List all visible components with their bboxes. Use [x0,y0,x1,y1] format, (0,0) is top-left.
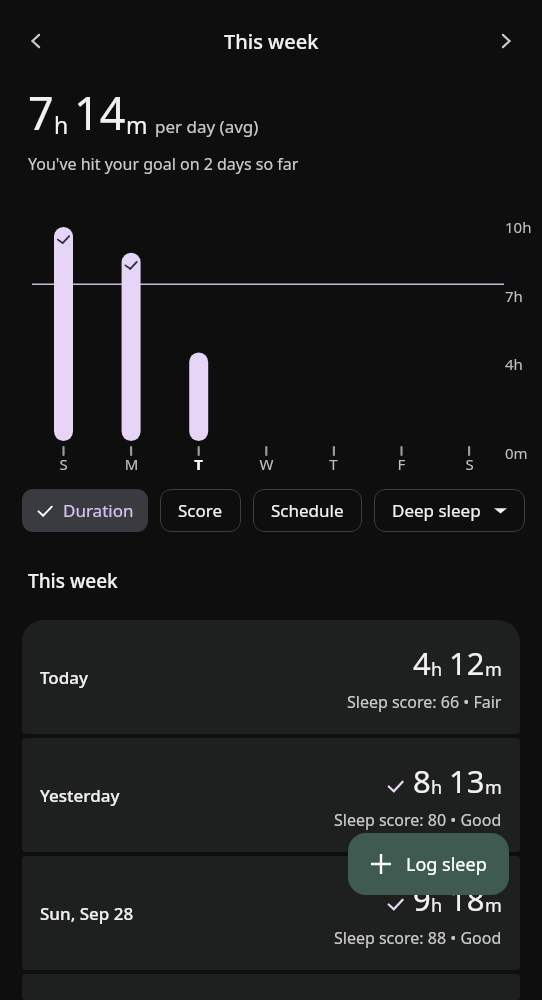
staticText: h [431,893,443,918]
staticText: Duration [63,499,134,522]
staticText: Sun, Sep 28 [40,902,134,925]
staticText: T [180,454,217,474]
staticText: 10h [505,217,532,237]
staticText: S [45,454,82,474]
staticText: M [113,454,150,474]
button[interactable]: Yesterday [22,738,520,852]
staticText: Log sleep [406,852,487,877]
staticText: This week [224,28,319,55]
staticText: 14 [74,82,126,143]
staticText: h [431,775,443,800]
staticText: m [485,657,502,682]
staticText: h [431,657,443,682]
staticText: Sleep score: 80 • Good [334,809,502,831]
staticText: Sleep score: 88 • Good [334,927,502,949]
staticText: 4 [413,642,431,684]
staticText: m [485,893,502,918]
staticText: 18 [449,878,485,920]
staticText: T [315,454,352,474]
staticText: m [126,109,148,140]
staticText: Deep sleep [392,499,481,522]
button[interactable]: Score [160,489,241,532]
staticText: W [248,454,285,474]
button[interactable]: Next week [483,18,529,64]
staticText: Today [40,666,88,689]
staticText: 9 [413,878,431,920]
staticText: Score [178,499,223,522]
staticText: F [383,454,420,474]
button[interactable]: Schedule [253,489,362,532]
staticText: per day (avg) [155,115,259,138]
staticText: h [54,109,69,140]
staticText: You've hit your goal on 2 days so far [28,153,299,175]
button[interactable]: Today [22,620,520,734]
staticText: 4h [505,354,523,374]
staticText: This week [28,568,118,594]
staticText: 7h [505,286,523,306]
button[interactable]: Deep sleep [374,489,525,532]
staticText: Schedule [271,499,344,522]
staticText: 0m [505,443,528,463]
staticText: Sleep score: 66 • Fair [347,691,502,713]
staticText: 8 [413,760,431,802]
button[interactable]: Sun, Sep 28 [22,856,520,970]
staticText: S [451,454,488,474]
button[interactable]: Log sleep [348,833,509,895]
staticText: 13 [449,760,485,802]
staticText: 12 [449,642,485,684]
staticText: m [485,775,502,800]
staticText: Yesterday [40,784,120,807]
button[interactable]: Previous week [13,18,59,64]
button[interactable]: Duration [22,489,148,532]
staticText: 7 [28,82,54,143]
